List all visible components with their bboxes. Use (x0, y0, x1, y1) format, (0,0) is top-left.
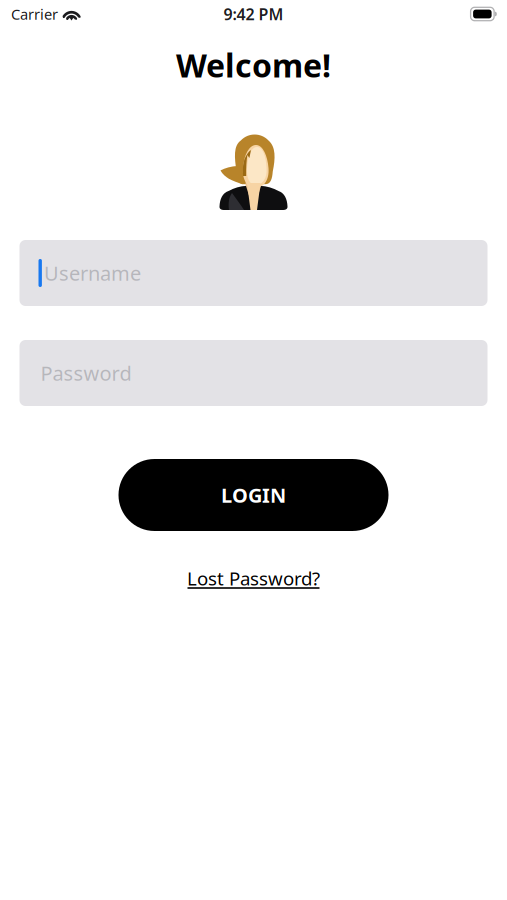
button[interactable]: Username (19, 240, 487, 306)
staticText: Password (40, 360, 131, 386)
staticText: Lost Password? (187, 566, 320, 591)
button[interactable]: Lost Password? (178, 570, 328, 589)
button[interactable]: Password (19, 340, 487, 406)
staticText: LOGIN (221, 482, 286, 508)
button[interactable]: LOGIN (118, 459, 388, 531)
staticText: Carrier (11, 4, 58, 24)
staticText: 9:42 PM (223, 3, 283, 25)
staticText: Username (44, 260, 141, 286)
staticText: Welcome! (176, 44, 331, 86)
